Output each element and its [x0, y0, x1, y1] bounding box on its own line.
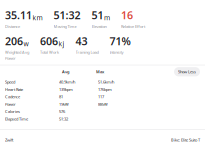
staticText: m [104, 13, 110, 22]
staticText: 206 [5, 34, 23, 48]
staticText: 43 [75, 34, 87, 48]
staticText: Power [5, 101, 16, 107]
staticText: 51.6km/h [98, 79, 114, 85]
staticText: 71% [109, 34, 130, 48]
staticText: 81 [59, 94, 63, 99]
staticText: 176bpm [98, 87, 112, 92]
staticText: Speed [5, 79, 15, 85]
staticText: Cadence [5, 94, 20, 99]
staticText: Elapsed Time [5, 116, 28, 122]
staticText: Bike: Elite Suito T [171, 137, 200, 143]
staticText: 117 [98, 94, 104, 99]
staticText: 576 [59, 109, 65, 114]
staticText: 35.11 [5, 8, 32, 22]
staticText: Distance [5, 24, 20, 29]
staticText: Max [96, 69, 104, 74]
staticText: 40.9km/h [59, 79, 75, 85]
staticText: Avg [62, 69, 70, 74]
button[interactable]: Show Less [174, 67, 200, 76]
staticText: Relative Effort [121, 24, 145, 29]
staticText: Moving Time [53, 24, 76, 29]
staticText: Calories [5, 109, 20, 114]
staticText: Training Load [75, 50, 98, 55]
staticText: Show Less [178, 69, 196, 74]
staticText: 51:32 [53, 8, 80, 22]
staticText: Heart Rate [5, 87, 23, 92]
staticText: km [32, 13, 42, 22]
staticText: Elevation [91, 24, 106, 29]
staticText: w [23, 39, 28, 48]
staticText: 51:32 [59, 116, 68, 122]
staticText: Zwift [5, 137, 13, 143]
staticText: 606 [40, 34, 58, 48]
staticText: 16 [121, 8, 133, 22]
staticText: 51 [91, 8, 103, 22]
staticText: Weighted Avg [5, 50, 29, 55]
staticText: Power [5, 55, 16, 61]
staticText: kj [58, 39, 64, 48]
staticText: 196W [59, 101, 69, 107]
staticText: 139bpm [59, 87, 73, 92]
staticText: 885W [98, 101, 108, 107]
staticText: Intensity [109, 50, 123, 55]
staticText: Total Work [40, 50, 59, 55]
